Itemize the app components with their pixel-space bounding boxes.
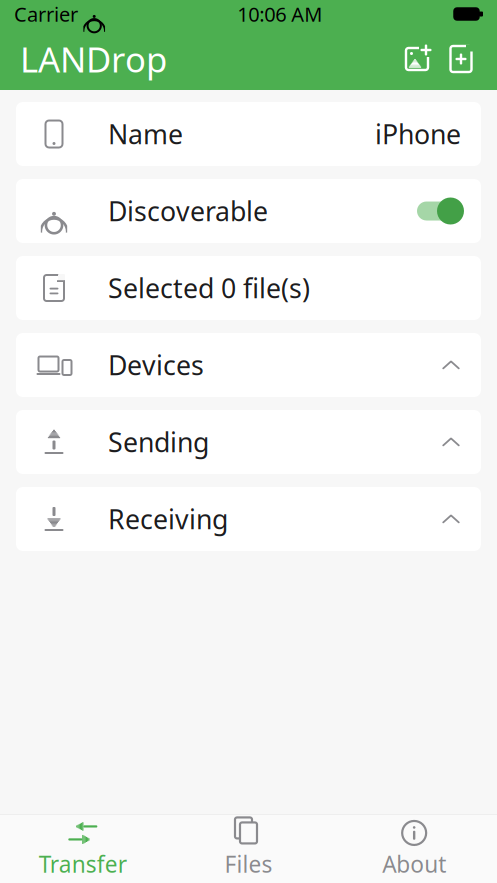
staticText: Name (108, 116, 183, 152)
button[interactable]: Discoverable (16, 179, 481, 243)
staticText: Carrier (14, 1, 78, 27)
staticText: LANDrop (20, 36, 167, 82)
button[interactable]: Name (16, 102, 481, 166)
button[interactable]: Sending (16, 410, 481, 474)
button[interactable]: Devices (16, 333, 481, 397)
staticText: Selected 0 file(s) (108, 270, 310, 306)
staticText: Discoverable (108, 193, 268, 229)
staticText: Sending (108, 424, 209, 460)
button[interactable]: Files (166, 818, 331, 880)
button[interactable]: Selected 0 file(s) (16, 256, 481, 320)
button[interactable]: Add photos (395, 37, 439, 81)
button[interactable]: Transfer (0, 818, 166, 880)
staticText: Files (224, 849, 272, 879)
staticText: Transfer (39, 849, 127, 879)
button[interactable]: Receiving (16, 487, 481, 551)
staticText: About (382, 849, 446, 879)
staticText: iPhone (375, 116, 461, 152)
staticText: 10:06 AM (237, 1, 322, 27)
button[interactable]: About (331, 818, 497, 880)
staticText: Receiving (108, 501, 228, 537)
button[interactable]: Add files (439, 37, 483, 81)
staticText: Devices (108, 347, 204, 383)
